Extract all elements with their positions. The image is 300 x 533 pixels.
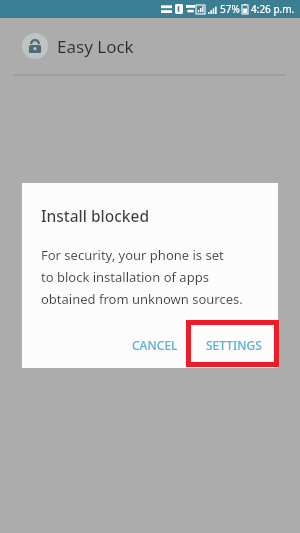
staticText: SETTINGS xyxy=(206,337,262,353)
staticText: to block installation of apps xyxy=(41,268,209,286)
staticText: obtained from unknown sources. xyxy=(41,290,243,308)
staticText: Easy Lock xyxy=(57,35,134,58)
button[interactable]: CANCEL xyxy=(118,324,192,366)
button[interactable]: SETTINGS xyxy=(192,324,278,366)
staticText: For security, your phone is set xyxy=(41,246,224,264)
staticText: CANCEL xyxy=(132,337,178,353)
other: App icon xyxy=(22,33,48,59)
staticText: Install blocked xyxy=(41,205,149,226)
staticText: 4:26 p.m. xyxy=(251,2,295,16)
staticText: 57% xyxy=(220,2,240,16)
